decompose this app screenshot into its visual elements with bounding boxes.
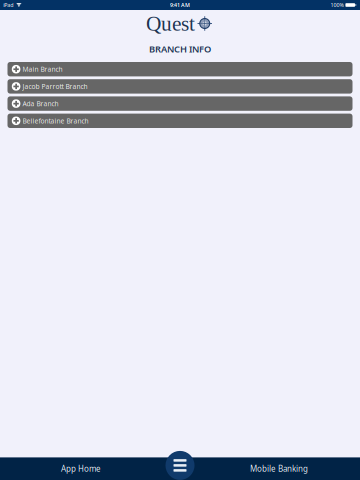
button[interactable]: Ada Branch bbox=[7, 96, 352, 111]
staticText: Quest bbox=[146, 12, 195, 35]
staticText: Main Branch bbox=[23, 65, 63, 74]
staticText: iPad bbox=[3, 1, 13, 9]
staticText: App Home bbox=[61, 463, 101, 474]
staticText: BRANCH INFO bbox=[149, 43, 211, 55]
staticText: Mobile Banking bbox=[250, 463, 308, 474]
button[interactable]: Jacob Parrott Branch bbox=[7, 79, 352, 94]
button[interactable]: Menu bbox=[165, 451, 194, 480]
staticText: Bellefontaine Branch bbox=[23, 116, 89, 125]
button[interactable]: App Home bbox=[0, 457, 162, 480]
button[interactable]: Mobile Banking bbox=[198, 457, 360, 480]
staticText: Ada Branch bbox=[23, 99, 59, 108]
staticText: 9:41 AM bbox=[170, 1, 190, 9]
staticText: 100% bbox=[330, 1, 343, 9]
staticText: Jacob Parrott Branch bbox=[23, 82, 88, 91]
button[interactable]: Bellefontaine Branch bbox=[7, 114, 352, 128]
button[interactable]: Main Branch bbox=[7, 62, 352, 76]
